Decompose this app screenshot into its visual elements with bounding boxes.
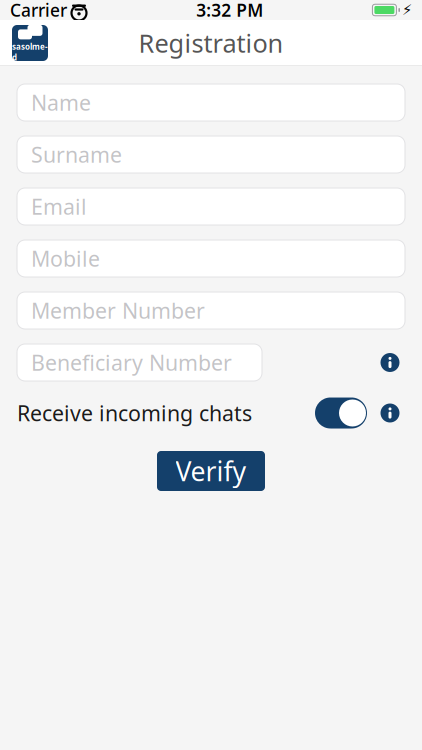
button[interactable]: Email <box>17 188 405 225</box>
staticText: Name <box>31 88 91 117</box>
staticText: sasolmed <box>12 41 48 63</box>
staticText: 3:32 PM <box>196 0 263 21</box>
staticText: Surname <box>31 140 122 169</box>
button[interactable]: Surname <box>17 136 405 173</box>
staticText: Registration <box>138 26 283 60</box>
button[interactable]: Beneficiary Number <box>17 344 262 381</box>
staticText: Mobile <box>31 244 100 273</box>
staticText: Verify <box>175 453 246 489</box>
staticText: Carrier <box>10 0 67 21</box>
button[interactable]: Mobile <box>17 240 405 277</box>
button[interactable]: Receive incoming chats <box>315 397 367 428</box>
staticText: Beneficiary Number <box>31 348 232 377</box>
button[interactable]: Verify <box>157 451 265 491</box>
staticText: Member Number <box>31 296 205 325</box>
button[interactable]: Name <box>17 84 405 121</box>
staticText: ⚡︎ <box>402 2 412 18</box>
button[interactable]: Sasolmed home <box>12 25 48 61</box>
button[interactable]: Member Number <box>17 292 405 329</box>
staticText: Email <box>31 192 87 221</box>
button[interactable]: More information <box>375 398 405 428</box>
staticText <box>66 0 72 25</box>
staticText: Receive incoming chats <box>17 399 252 427</box>
button[interactable]: More information <box>375 347 405 377</box>
